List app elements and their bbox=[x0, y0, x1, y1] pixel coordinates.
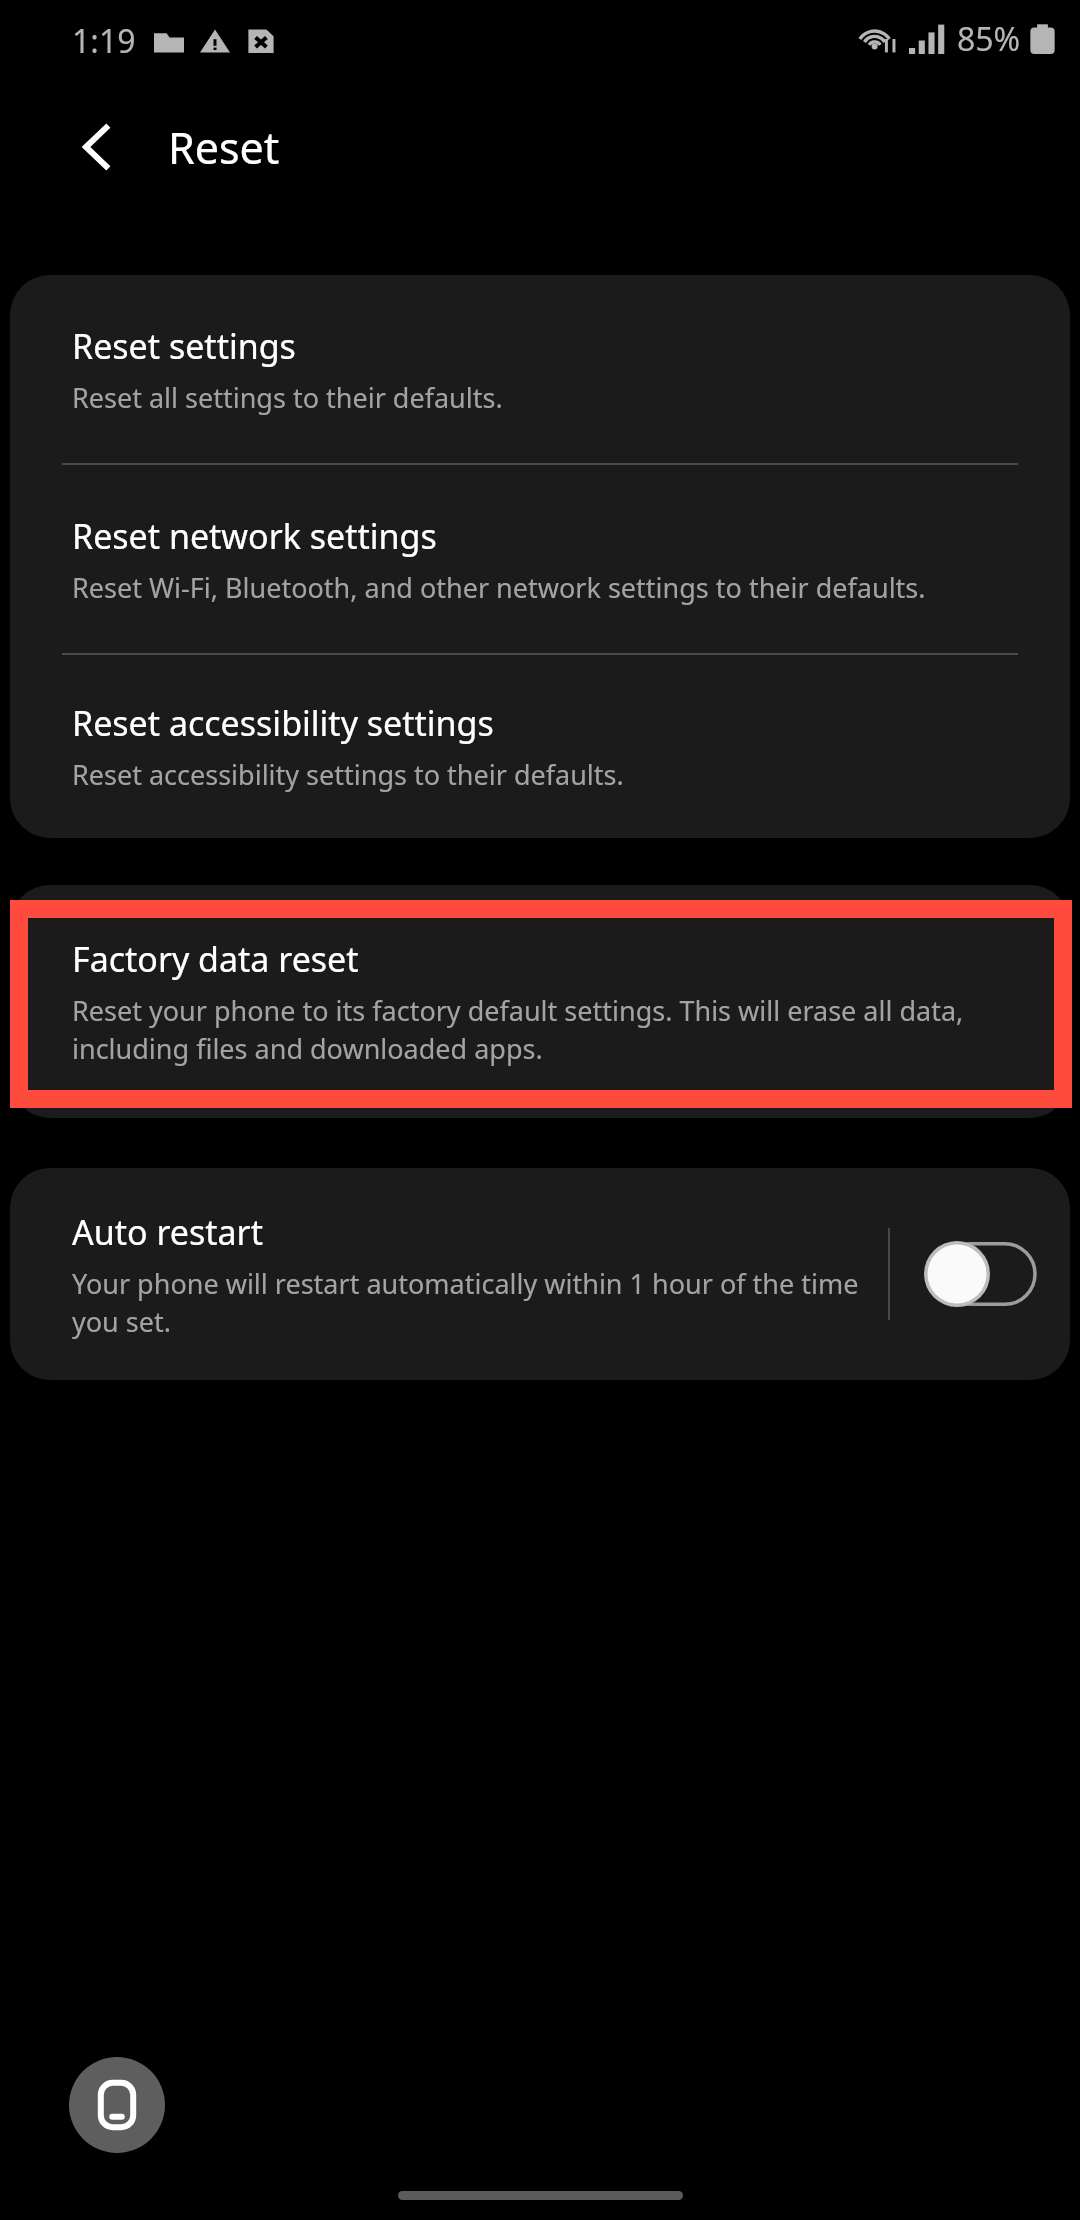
staticText: Reset settings bbox=[72, 323, 296, 369]
button[interactable]: Factory data reset bbox=[10, 885, 1070, 1118]
staticText: 85% bbox=[957, 17, 1021, 61]
staticText: Reset accessibility settings bbox=[72, 700, 494, 746]
staticText: Reset your phone to its factory default … bbox=[72, 992, 1020, 1067]
staticText: Reset network settings bbox=[72, 513, 437, 559]
button[interactable]: Back bbox=[54, 104, 140, 190]
staticText: Reset Wi-Fi, Bluetooth, and other networ… bbox=[72, 569, 926, 606]
staticText: Your phone will restart automatically wi… bbox=[72, 1265, 872, 1340]
staticText: Reset all settings to their defaults. bbox=[72, 379, 503, 416]
button[interactable]: Reset network settings bbox=[10, 465, 1070, 653]
staticText: Auto restart bbox=[72, 1209, 263, 1255]
staticText: Reset accessibility settings to their de… bbox=[72, 756, 624, 793]
staticText: Factory data reset bbox=[72, 936, 359, 982]
button[interactable]: Auto restart bbox=[10, 1168, 888, 1380]
staticText: Reset bbox=[168, 118, 280, 177]
button[interactable]: Auto restart bbox=[890, 1168, 1070, 1380]
button[interactable]: Reset accessibility settings bbox=[10, 655, 1070, 838]
button[interactable]: Device bbox=[69, 2057, 165, 2153]
staticText: 1:19 bbox=[72, 19, 136, 63]
button[interactable]: Reset settings bbox=[10, 275, 1070, 463]
